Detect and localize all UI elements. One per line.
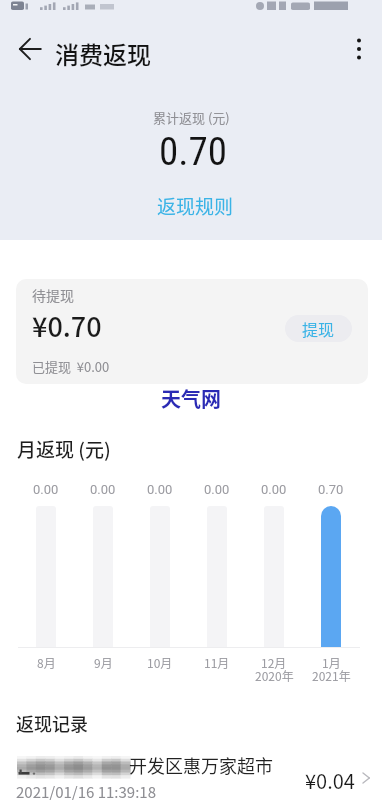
staticText: 提现	[302, 317, 335, 340]
button[interactable]: 提现	[285, 315, 352, 342]
staticText: 2021/01/16 11:39:18	[16, 781, 157, 800]
staticText: 2021年	[312, 667, 351, 684]
staticText: 0.00	[90, 482, 116, 497]
staticText: 9月	[94, 654, 113, 671]
button[interactable]: 开发区惠万家超市	[0, 745, 382, 800]
button[interactable]: Back	[12, 31, 48, 67]
staticText: ¥0.04	[305, 766, 355, 795]
staticText: 待提现	[32, 285, 74, 305]
staticText: 0.70	[159, 129, 228, 175]
staticText: 返现规则	[157, 192, 234, 220]
staticText: 月返现 (元)	[17, 435, 111, 463]
staticText: 0.00	[204, 482, 230, 497]
staticText: 消费返现	[55, 36, 151, 71]
staticText: 累计返现 (元)	[153, 108, 230, 127]
staticText: 12月	[261, 654, 287, 671]
button[interactable]: 返现规则	[147, 187, 242, 221]
staticText: 8月	[37, 654, 56, 671]
staticText: 0.00	[147, 482, 173, 497]
staticText: 0.00	[261, 482, 287, 497]
staticText: 1月	[322, 654, 341, 671]
staticText: 2020年	[255, 667, 294, 684]
staticText: 已提现 ¥0.00	[32, 357, 110, 376]
button[interactable]: More options	[341, 31, 377, 67]
staticText: 开发区惠万家超市	[129, 752, 273, 778]
staticText: 11月	[204, 654, 230, 671]
staticText: ¥0.70	[32, 306, 102, 345]
staticText: 0.00	[33, 482, 59, 497]
staticText: 10月	[147, 654, 173, 671]
staticText: 天气网	[0, 384, 382, 413]
staticText: 返现记录	[16, 710, 88, 736]
staticText: 0.70	[318, 482, 344, 497]
